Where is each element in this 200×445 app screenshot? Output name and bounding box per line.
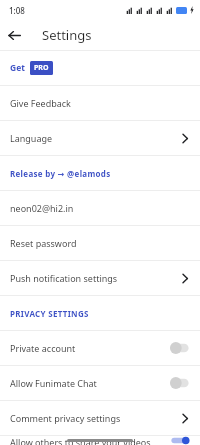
button[interactable]: Back (0, 21, 28, 49)
button[interactable]: Allow Funimate Chat (0, 366, 200, 400)
staticText: neon02@hi2.in (10, 202, 74, 214)
staticText: Allow others to share your videos (10, 436, 170, 445)
staticText: Push notification settings (10, 272, 181, 284)
staticText: Give Feedback (10, 97, 71, 109)
staticText: Settings (42, 26, 92, 44)
staticText: PRO (34, 63, 49, 73)
button[interactable]: Allow others to share your videos (0, 436, 200, 445)
button[interactable]: Toggle on (170, 436, 190, 445)
staticText: PRIVACY SETTINGS (10, 308, 89, 319)
button[interactable]: Language (0, 121, 200, 155)
button[interactable]: neon02@hi2.in (0, 191, 200, 225)
staticText: Comment privacy settings (10, 412, 181, 424)
button[interactable]: Comment privacy settings (0, 401, 200, 435)
staticText: Language (10, 132, 181, 144)
staticText: Get (10, 62, 25, 74)
staticText: 1:08 (9, 5, 25, 16)
staticText: Reset password (10, 237, 77, 249)
staticText: Allow Funimate Chat (10, 377, 170, 389)
button[interactable]: Push notification settings (0, 261, 200, 295)
button[interactable]: Toggle off (170, 376, 190, 390)
staticText: Release by → @elamods (10, 168, 111, 179)
staticText: Private account (10, 342, 170, 354)
button[interactable]: Give Feedback (0, 86, 200, 120)
button[interactable]: Private account (0, 331, 200, 365)
button[interactable]: Reset password (0, 226, 200, 260)
button[interactable]: Get (0, 51, 200, 85)
button[interactable]: Toggle off (170, 341, 190, 355)
